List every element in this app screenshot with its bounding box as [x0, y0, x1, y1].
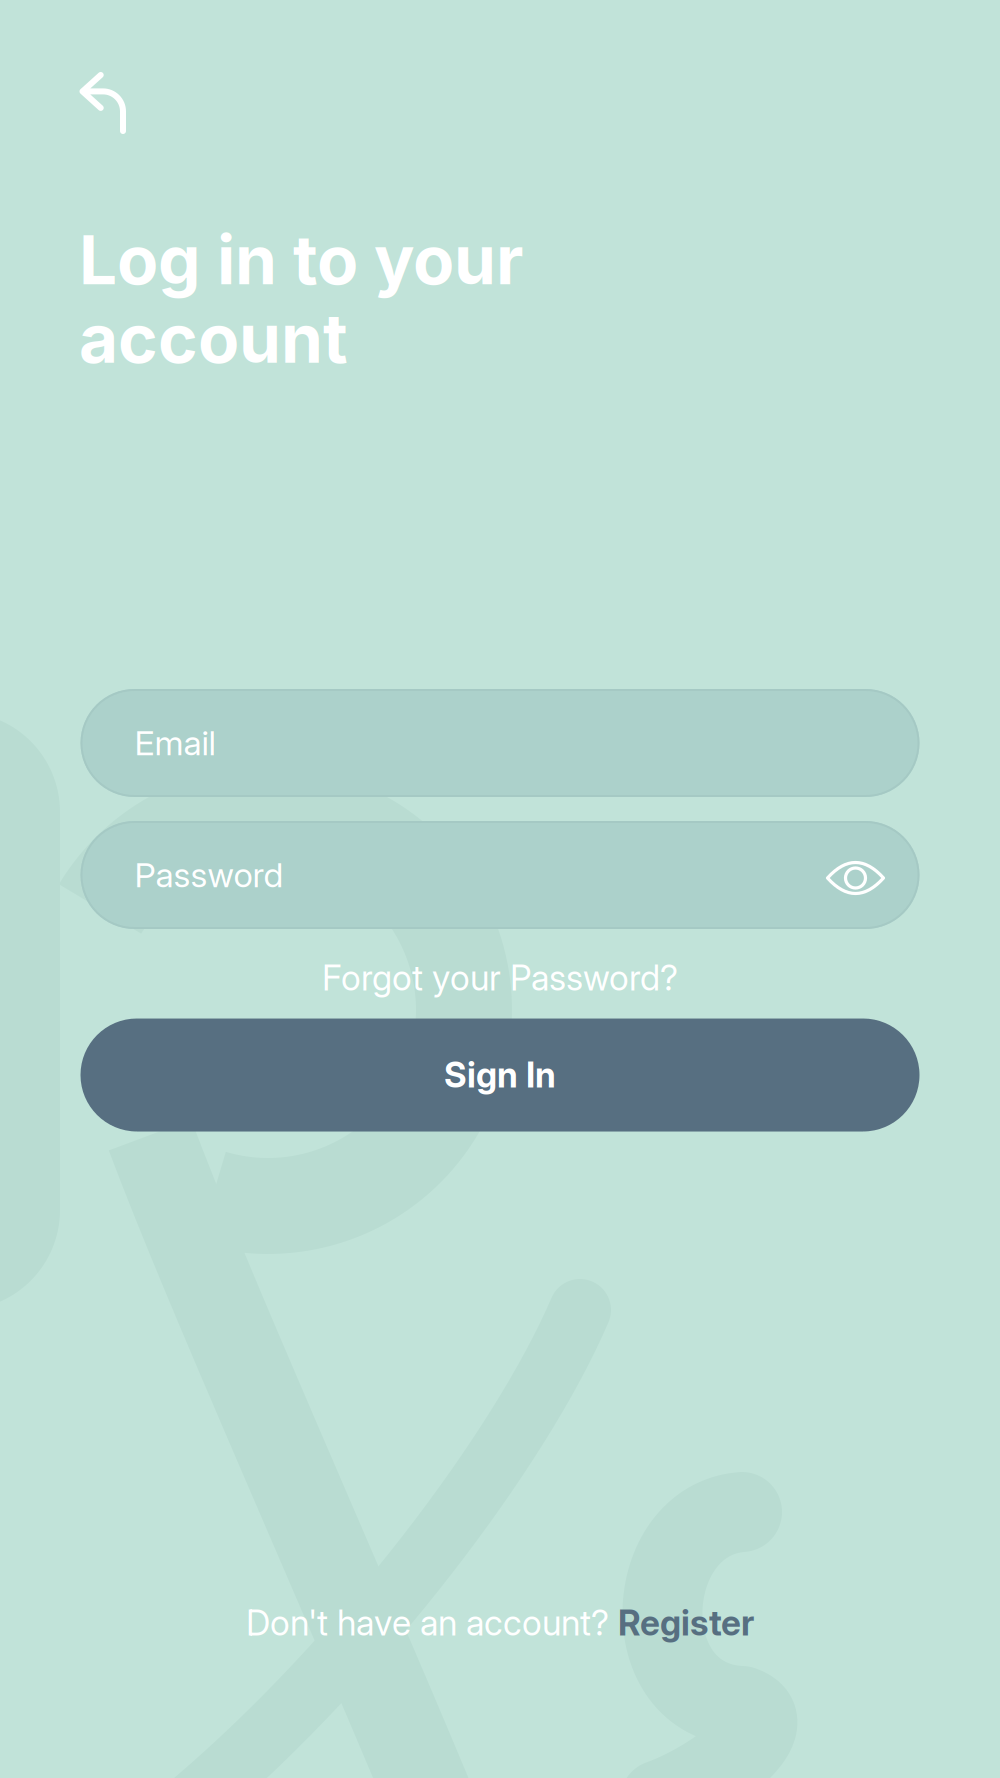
- button[interactable]: Don't have an account?: [246, 1591, 754, 1655]
- staticText: Forgot your Password?: [322, 957, 678, 999]
- staticText: Don't have an account?: [246, 1602, 618, 1644]
- button[interactable]: Email: [80, 689, 919, 797]
- staticText: Password: [134, 854, 283, 895]
- button[interactable]: Password: [80, 821, 919, 929]
- button[interactable]: Forgot your Password?: [250, 942, 750, 1014]
- staticText: Log in to your: [79, 219, 523, 300]
- staticText: Email: [134, 722, 215, 763]
- staticText: Sign In: [444, 1054, 556, 1096]
- staticText: account: [79, 297, 348, 379]
- button[interactable]: Show password: [812, 832, 898, 918]
- staticText: Register: [618, 1602, 754, 1644]
- button[interactable]: Back: [52, 52, 156, 156]
- button[interactable]: Sign In: [80, 1018, 919, 1131]
